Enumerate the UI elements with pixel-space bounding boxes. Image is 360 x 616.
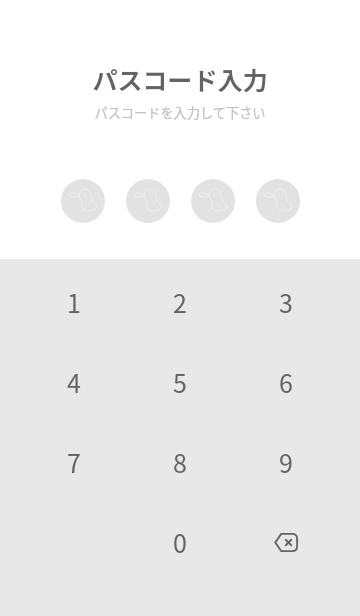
staticText: 7 (67, 444, 81, 480)
staticText: 6 (279, 364, 293, 400)
button[interactable]: 7 (21, 422, 127, 502)
staticText: 9 (279, 444, 293, 480)
staticText: パスコードを入力して下さい (94, 103, 266, 122)
staticText: 8 (173, 444, 187, 480)
button[interactable]: 2 (127, 262, 233, 342)
staticText: 0 (173, 524, 187, 560)
staticText: 4 (67, 364, 81, 400)
staticText: 3 (279, 284, 293, 320)
button[interactable]: 3 (233, 262, 339, 342)
staticText: 5 (173, 364, 187, 400)
button[interactable]: 4 (21, 342, 127, 422)
button[interactable]: Backspace (233, 502, 339, 582)
staticText: 2 (173, 284, 187, 320)
button[interactable]: 1 (21, 262, 127, 342)
button[interactable]: 0 (127, 502, 233, 582)
button[interactable]: 9 (233, 422, 339, 502)
staticText: パスコード入力 (92, 61, 268, 97)
button[interactable]: 5 (127, 342, 233, 422)
other: Backspace (274, 533, 298, 552)
staticText: 1 (67, 284, 81, 320)
button[interactable]: 6 (233, 342, 339, 422)
button[interactable]: 8 (127, 422, 233, 502)
